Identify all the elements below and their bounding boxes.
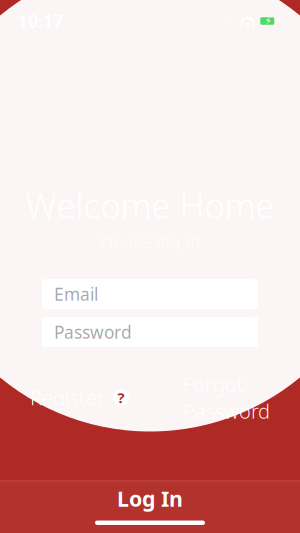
staticText: ⚡︎ [264,15,271,27]
button[interactable]: Forgot Password [183,371,270,424]
staticText: Email [54,282,98,305]
button[interactable]: Email [42,279,258,309]
staticText: Log In [117,484,183,513]
staticText: 10:17 [18,9,63,32]
staticText: ? [117,388,124,407]
staticText: Register [30,384,105,411]
staticText: Forgot Password [183,371,270,424]
button[interactable]: Log In [0,481,300,515]
button[interactable]: Password [42,317,258,347]
staticText: Password [54,320,132,343]
button[interactable]: Register [30,384,129,411]
